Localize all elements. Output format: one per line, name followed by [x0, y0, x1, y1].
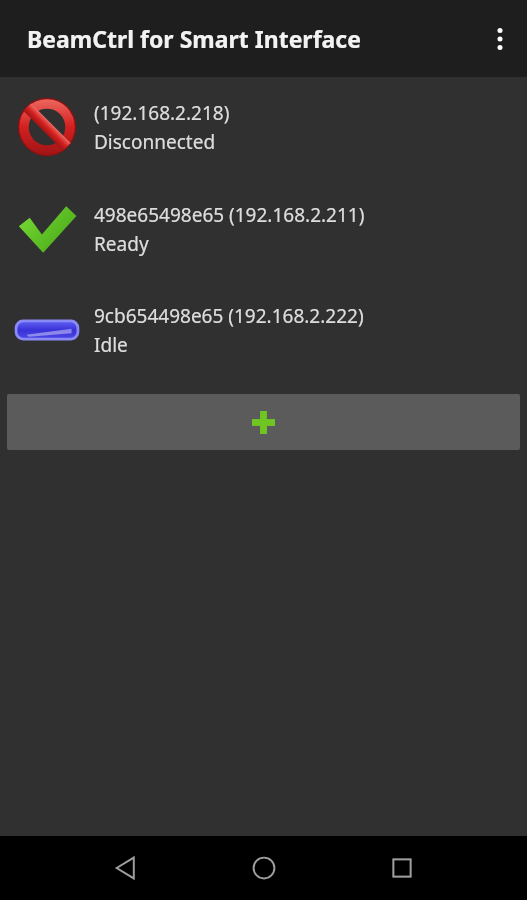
button[interactable]: More options: [473, 0, 527, 77]
button[interactable]: Recent apps: [370, 836, 434, 900]
staticText: Ready: [94, 231, 149, 257]
staticText: 9cb654498e65 (192.168.2.222): [94, 303, 364, 329]
staticText: (192.168.2.218): [94, 100, 230, 126]
staticText: 498e65498e65 (192.168.2.211): [94, 202, 365, 228]
button[interactable]: 498e65498e65 (192.168.2.211): [0, 194, 527, 264]
button[interactable]: Add device: [7, 394, 520, 450]
staticText: BeamCtrl for Smart Interface: [27, 23, 361, 54]
button[interactable]: (192.168.2.218): [0, 92, 527, 162]
button[interactable]: Home: [232, 836, 296, 900]
staticText: Disconnected: [94, 129, 216, 155]
button[interactable]: Back: [94, 836, 158, 900]
staticText: Idle: [94, 332, 128, 358]
button[interactable]: 9cb654498e65 (192.168.2.222): [0, 295, 527, 365]
